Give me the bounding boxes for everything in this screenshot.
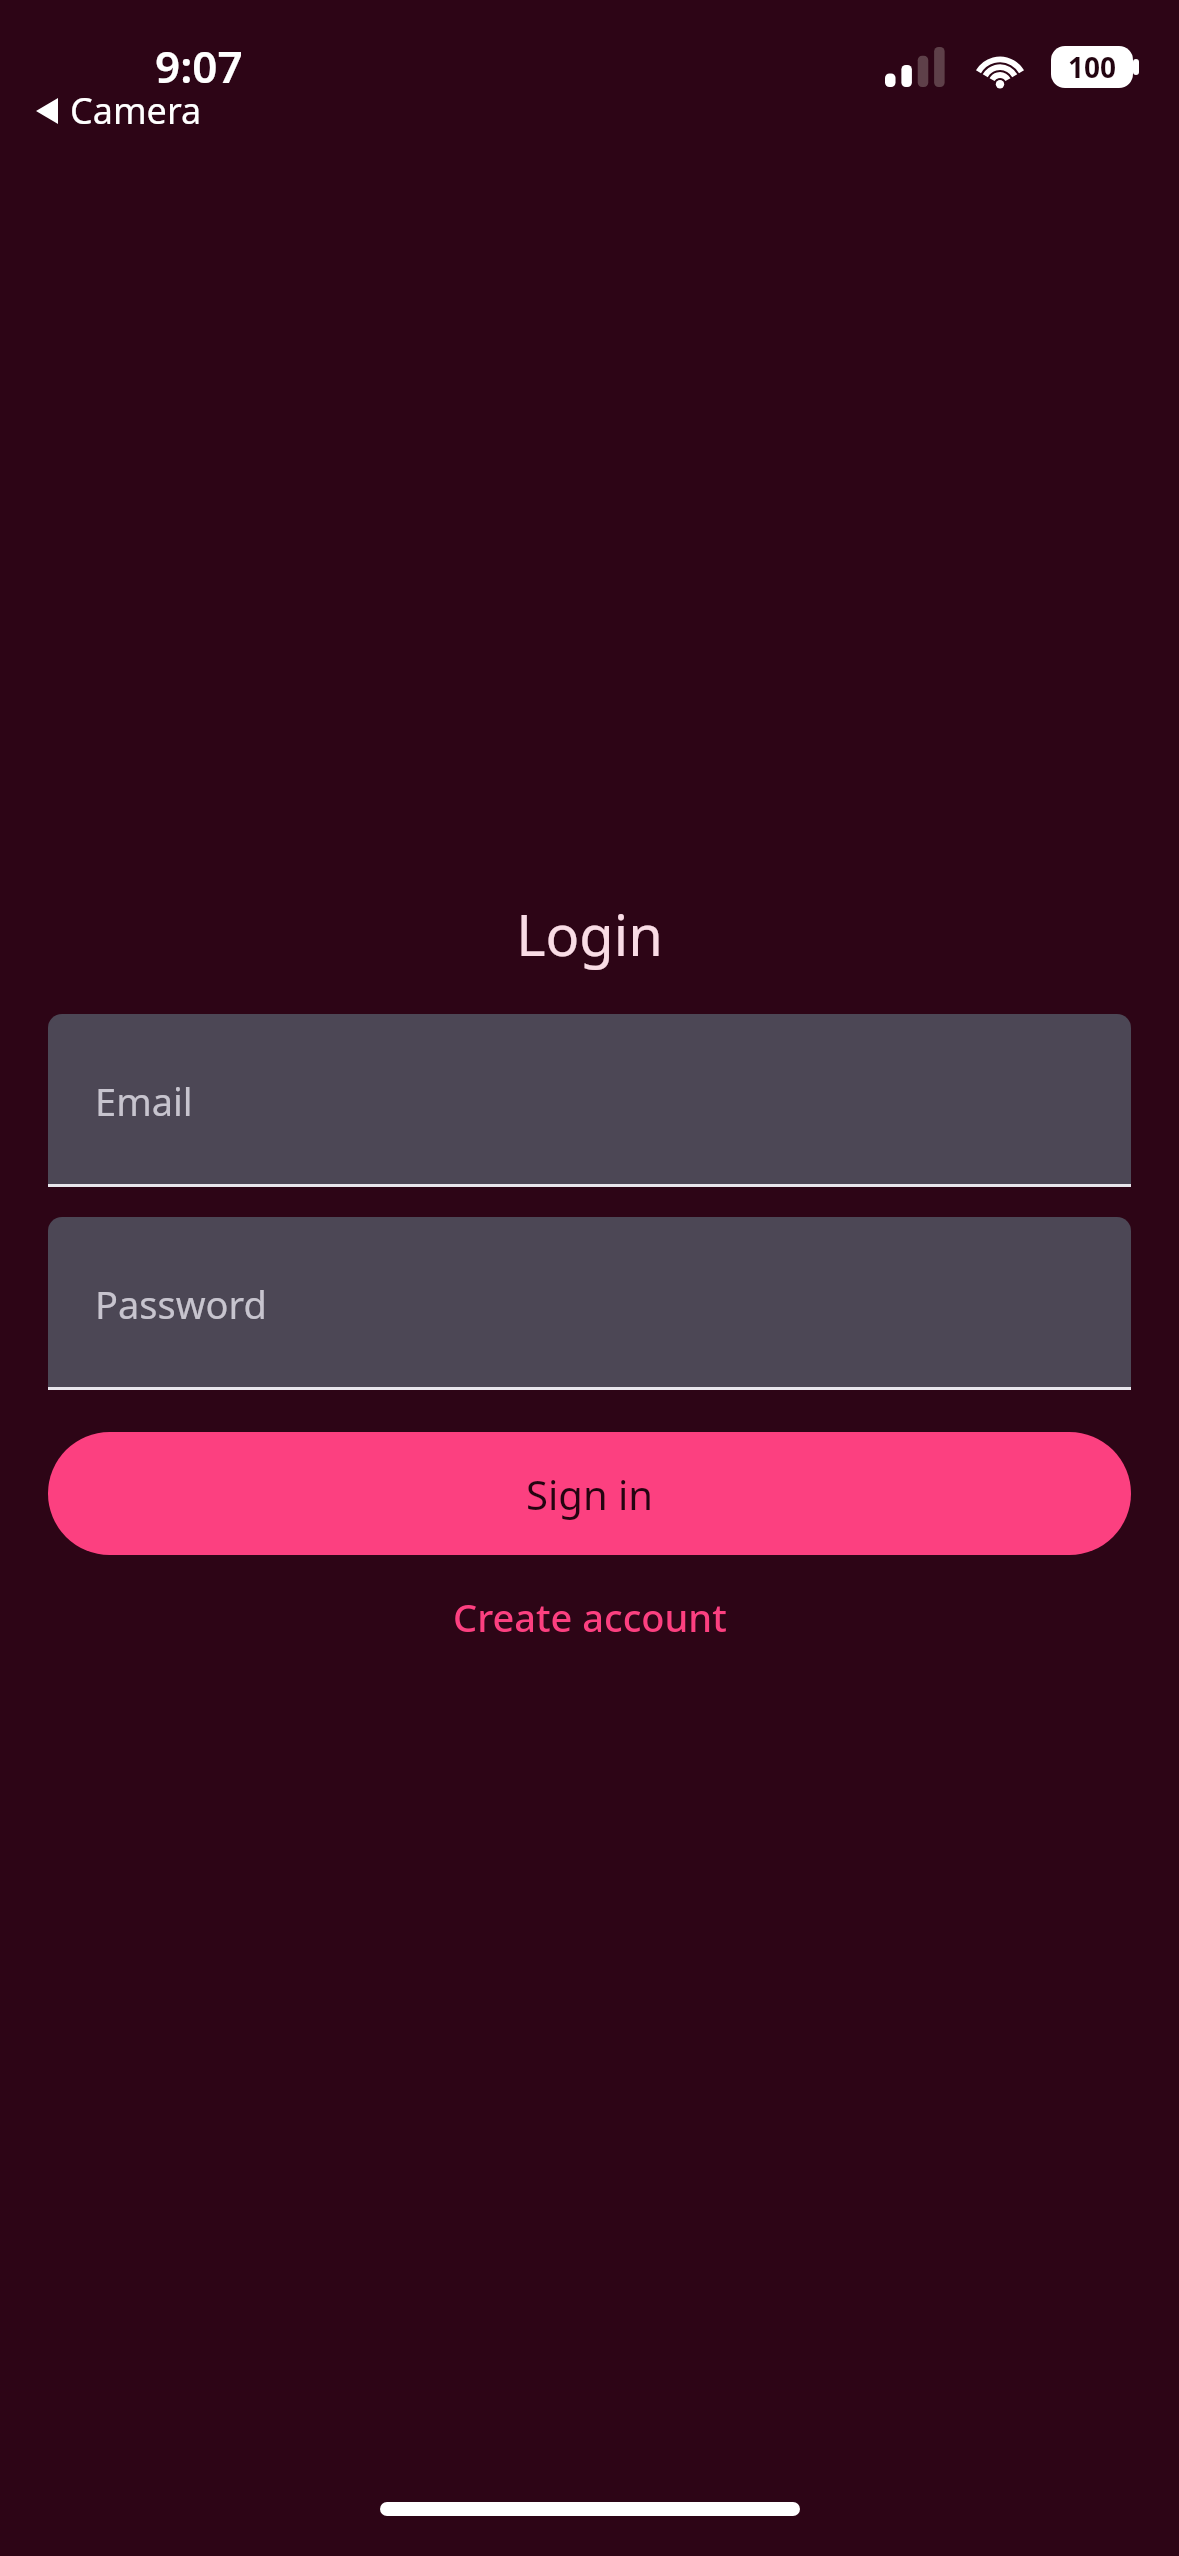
button[interactable]: Email	[48, 1014, 1131, 1187]
staticText: Create account	[453, 1591, 727, 1643]
button[interactable]: Back to Camera	[36, 86, 202, 135]
button[interactable]: Password	[48, 1217, 1131, 1390]
staticText: 100	[1068, 48, 1117, 86]
staticText: 9:07	[155, 36, 243, 96]
staticText: Login	[516, 896, 663, 972]
button[interactable]: Create account	[433, 1573, 747, 1661]
button[interactable]: Sign in	[48, 1432, 1131, 1555]
staticText: Password	[95, 1278, 267, 1330]
staticText: Email	[95, 1075, 193, 1127]
staticText: Sign in	[526, 1467, 654, 1521]
staticText: Camera	[70, 86, 202, 135]
